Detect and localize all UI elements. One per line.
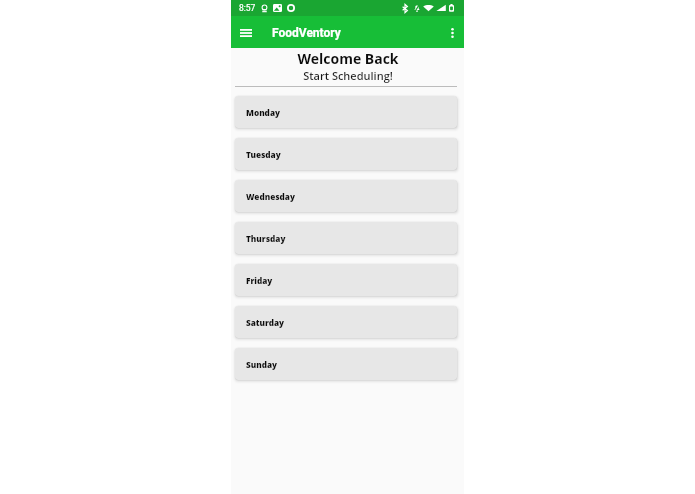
button[interactable]: Thursday bbox=[235, 222, 457, 254]
staticText: Saturday bbox=[246, 317, 285, 328]
button[interactable]: Wednesday bbox=[235, 180, 457, 212]
button[interactable]: Tuesday bbox=[235, 138, 457, 170]
staticText: Friday bbox=[246, 275, 273, 286]
staticText: Sunday bbox=[246, 359, 278, 370]
staticText: Monday bbox=[246, 107, 280, 118]
button[interactable]: Monday bbox=[235, 96, 457, 128]
button[interactable]: Saturday bbox=[235, 306, 457, 338]
button[interactable]: Open navigation menu bbox=[231, 17, 261, 48]
staticText: Welcome Back bbox=[297, 49, 399, 68]
button[interactable]: More options bbox=[440, 17, 464, 48]
staticText: Wednesday bbox=[246, 191, 295, 202]
button[interactable]: Friday bbox=[235, 264, 457, 296]
staticText: FoodVentory bbox=[272, 26, 341, 40]
staticText: Start Scheduling! bbox=[303, 68, 393, 83]
staticText: Thursday bbox=[246, 233, 286, 244]
staticText: 8:57 bbox=[239, 3, 256, 13]
button[interactable]: Sunday bbox=[235, 348, 457, 380]
staticText: Tuesday bbox=[246, 149, 281, 160]
